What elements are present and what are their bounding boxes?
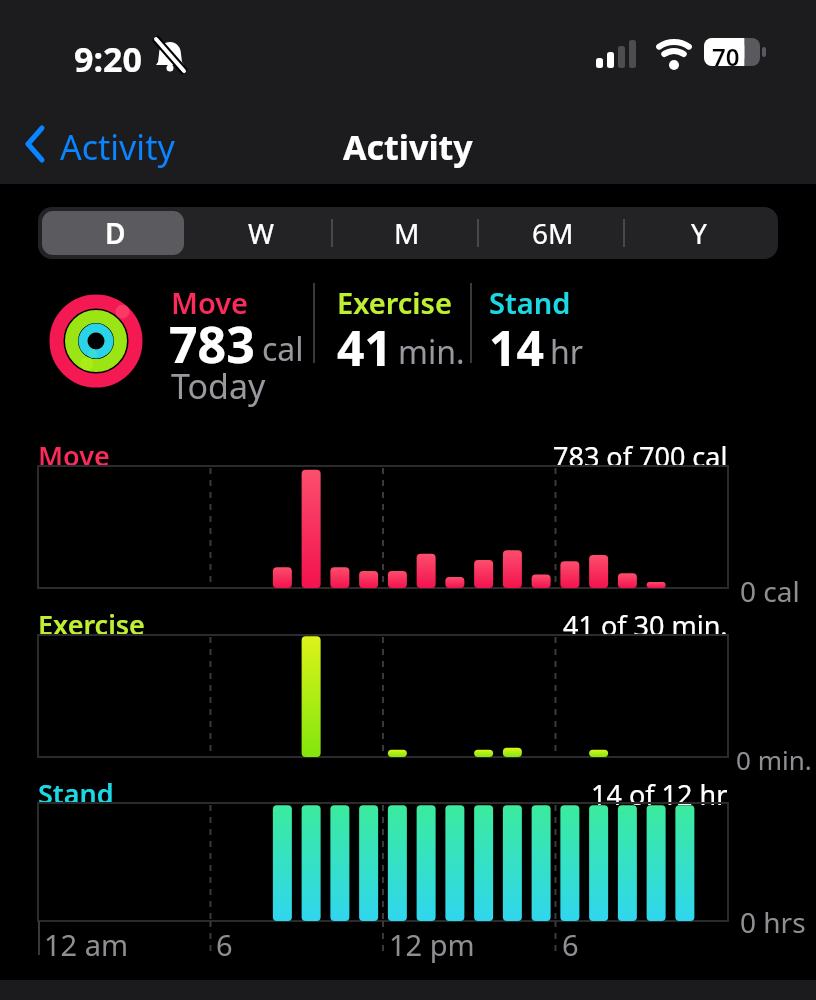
staticText: 783 (169, 310, 255, 378)
staticText: 14 (489, 315, 544, 380)
staticText: 70 (712, 40, 740, 73)
staticText: D (105, 214, 126, 252)
button[interactable]: Activity (60, 124, 175, 170)
staticText: Exercise (38, 606, 145, 643)
staticText: M (394, 214, 420, 252)
staticText: 783 of 700 cal (553, 438, 728, 475)
staticText: 0 min. (736, 742, 812, 777)
staticText: min. (398, 330, 465, 374)
button[interactable]: W (188, 211, 334, 255)
staticText: hr (550, 330, 583, 374)
staticText: cal (262, 327, 304, 371)
staticText: 12 am (44, 925, 129, 964)
staticText: 12 pm (389, 925, 475, 964)
staticText: W (248, 214, 275, 252)
staticText: Activity (343, 124, 473, 170)
staticText: 6 (562, 925, 579, 964)
button[interactable]: D (42, 211, 188, 255)
staticText: Today (171, 363, 266, 409)
staticText: 6M (532, 214, 574, 252)
staticText: Move (171, 283, 249, 322)
staticText: 0 hrs (740, 903, 806, 941)
staticText: Activity (60, 124, 175, 170)
button[interactable]: M (334, 211, 480, 255)
staticText: 0 cal (740, 572, 800, 610)
staticText: Move (38, 437, 110, 474)
staticText: 41 (337, 315, 392, 380)
staticText: Exercise (337, 283, 452, 322)
staticText: Stand (38, 775, 114, 812)
staticText: 14 of 12 hr (591, 776, 728, 813)
button[interactable]: 6M (480, 211, 626, 255)
staticText: 6 (216, 925, 233, 964)
staticText: 9:20 (74, 36, 142, 82)
button[interactable] (24, 126, 46, 162)
staticText: Y (691, 214, 707, 252)
staticText: Stand (489, 283, 571, 322)
staticText: 41 of 30 min. (563, 607, 728, 644)
button[interactable]: Y (626, 211, 772, 255)
